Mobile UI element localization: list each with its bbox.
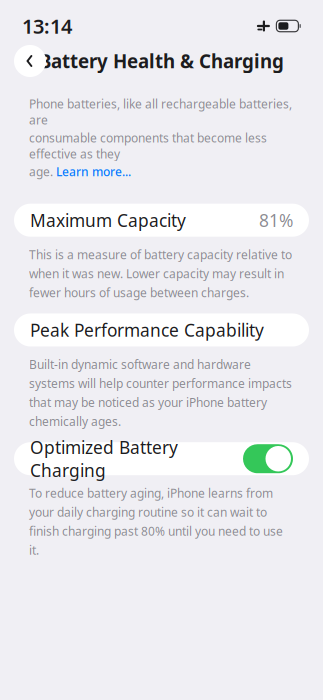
staticText: 13:14 bbox=[22, 13, 72, 39]
button[interactable]: Learn more... bbox=[56, 164, 131, 180]
staticText: 81% bbox=[259, 209, 293, 232]
staticText: Phone batteries, like all rechargeable b… bbox=[29, 96, 292, 128]
staticText: This is a measure of battery capacity re… bbox=[29, 247, 292, 300]
staticText: Built-in dynamic software and hardware s… bbox=[29, 356, 292, 429]
staticText: Learn more... bbox=[56, 164, 131, 180]
staticText: Maximum Capacity bbox=[30, 209, 186, 232]
button[interactable]: Optimized Battery Charging bbox=[243, 444, 293, 473]
staticText: consumable components that become less e… bbox=[29, 130, 267, 162]
button[interactable]: Back bbox=[14, 45, 46, 77]
staticText: age. bbox=[29, 164, 53, 180]
staticText: Battery Health & Charging bbox=[39, 49, 284, 73]
staticText: To reduce battery aging, iPhone learns f… bbox=[29, 485, 283, 558]
staticText: Optimized Battery Charging bbox=[30, 436, 178, 482]
staticText: Peak Performance Capability bbox=[30, 318, 264, 341]
